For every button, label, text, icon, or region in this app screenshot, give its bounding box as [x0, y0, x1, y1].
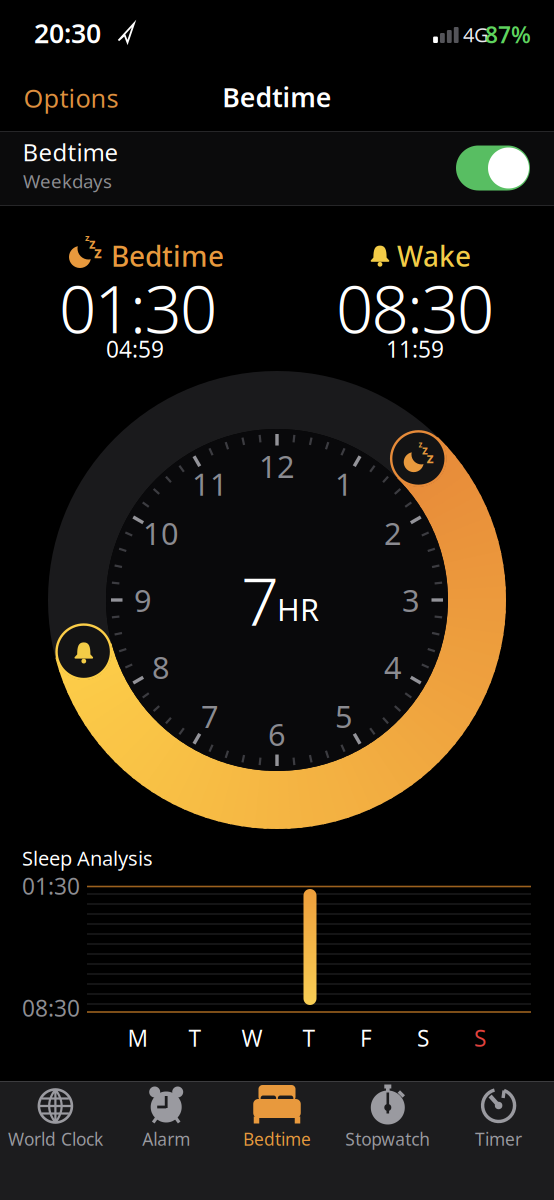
staticText: 12 [259, 446, 295, 486]
staticText: 11:59 [386, 334, 444, 364]
staticText: HR [277, 589, 319, 629]
staticText: S [474, 1023, 486, 1053]
staticText: T [302, 1023, 315, 1053]
staticText: T [188, 1023, 201, 1053]
staticText: 20:30 [34, 15, 101, 51]
staticText: Stopwatch [345, 1127, 430, 1150]
staticText: z [427, 448, 434, 467]
staticText: z [422, 442, 428, 458]
staticText: 4G [463, 21, 489, 48]
staticText: 5 [335, 696, 353, 736]
staticText: 7 [201, 696, 219, 736]
staticText: z [94, 241, 102, 263]
staticText: Wake [397, 237, 471, 275]
staticText: 87% [485, 19, 531, 49]
staticText: S [417, 1023, 429, 1053]
staticText: 10 [143, 513, 179, 553]
staticText: Bedtime [111, 237, 224, 275]
staticText: 1 [335, 464, 353, 504]
staticText: 6 [268, 714, 286, 754]
staticText: 01:30 [59, 265, 217, 351]
staticText: World Clock [8, 1127, 103, 1150]
staticText: M [127, 1023, 148, 1053]
staticText: Options [23, 81, 118, 115]
staticText: 11 [192, 464, 228, 504]
staticText: 08:30 [22, 993, 80, 1023]
staticText: 08:30 [336, 265, 494, 351]
staticText: Weekdays [23, 169, 112, 193]
staticText: z [89, 235, 96, 252]
staticText: F [360, 1023, 372, 1053]
staticText: Alarm [142, 1127, 190, 1150]
staticText: W [241, 1023, 262, 1053]
staticText: Bedtime [22, 136, 118, 168]
staticText: Sleep Analysis [22, 845, 153, 871]
staticText: z [85, 231, 90, 244]
staticText: Bedtime [243, 1127, 311, 1150]
staticText: 9 [134, 580, 152, 620]
staticText: 4 [384, 647, 402, 687]
staticText: 04:59 [106, 334, 164, 364]
staticText: 8 [152, 647, 170, 687]
staticText: 7 [241, 556, 279, 644]
staticText: 01:30 [22, 871, 80, 901]
staticText: z [418, 439, 422, 450]
staticText: 2 [384, 513, 402, 553]
staticText: Timer [475, 1127, 522, 1150]
staticText: Bedtime [222, 79, 332, 115]
staticText: 3 [402, 580, 420, 620]
